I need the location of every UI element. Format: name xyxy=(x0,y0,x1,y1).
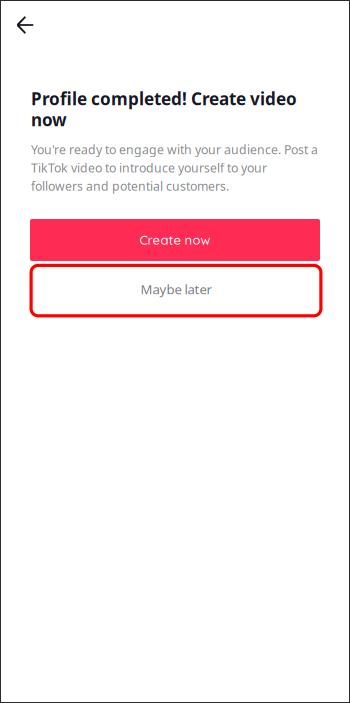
staticText: Profile completed! Create video now xyxy=(31,88,297,130)
staticText: You're ready to engage with your audienc… xyxy=(31,140,318,195)
button[interactable]: Create now xyxy=(30,219,320,261)
staticText: Create now xyxy=(139,232,210,248)
button[interactable]: Maybe later xyxy=(29,264,322,317)
button[interactable]: Back xyxy=(8,8,42,42)
staticText: Maybe later xyxy=(140,280,211,298)
